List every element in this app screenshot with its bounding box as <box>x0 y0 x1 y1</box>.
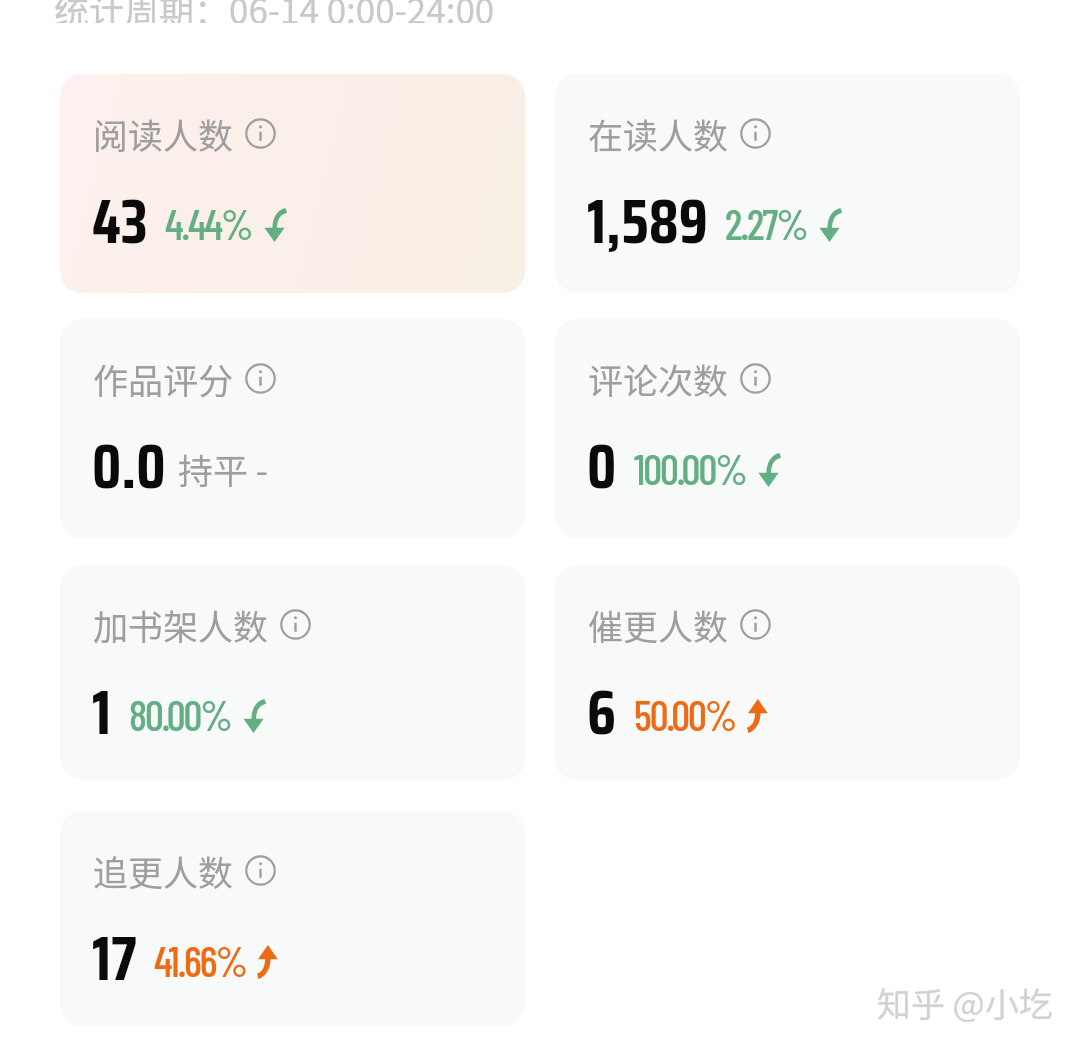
staticText: 1,589 <box>587 173 708 270</box>
staticText: 17 <box>92 910 137 1007</box>
staticText: 统计周期：06-14 0:00-24:00 <box>54 0 495 23</box>
staticText: 80.00% <box>129 689 231 739</box>
staticText: 100.00% <box>634 443 746 493</box>
staticText: 持平 - <box>178 443 268 494</box>
button[interactable]: About 作品评分 <box>245 363 276 394</box>
staticText: 1 <box>92 664 112 761</box>
staticText: 6 <box>587 664 617 761</box>
staticText: 评论次数 <box>588 353 729 404</box>
staticText: 0 <box>587 418 617 515</box>
button[interactable]: 加书架人数 <box>60 565 525 780</box>
button[interactable]: 催更人数 <box>555 565 1020 780</box>
staticText: 2.27% <box>725 198 807 248</box>
button[interactable]: 评论次数 <box>555 319 1020 538</box>
staticText: 在读人数 <box>588 108 729 159</box>
button[interactable]: About 加书架人数 <box>280 609 311 640</box>
staticText: 催更人数 <box>588 599 729 650</box>
button[interactable]: About 在读人数 <box>740 118 771 149</box>
staticText: 知乎 @小圪 <box>877 978 1053 1027</box>
button[interactable]: About 阅读人数 <box>245 118 276 149</box>
staticText: 加书架人数 <box>93 599 269 650</box>
button[interactable]: About 追更人数 <box>245 855 276 886</box>
button[interactable]: About 催更人数 <box>740 609 771 640</box>
staticText: 50.00% <box>634 689 736 739</box>
staticText: 43 <box>92 173 148 270</box>
button[interactable]: 作品评分 <box>60 319 525 538</box>
staticText: 41.66% <box>154 935 246 985</box>
button[interactable]: 追更人数 <box>60 811 525 1026</box>
staticText: 追更人数 <box>93 845 234 896</box>
staticText: 阅读人数 <box>93 108 234 159</box>
staticText: 4.44% <box>165 198 252 248</box>
staticText: 作品评分 <box>93 353 234 404</box>
button[interactable]: 在读人数 <box>555 74 1020 293</box>
button[interactable]: About 评论次数 <box>740 363 771 394</box>
button[interactable]: 阅读人数 <box>60 74 525 293</box>
staticText: 0.0 <box>92 418 166 515</box>
